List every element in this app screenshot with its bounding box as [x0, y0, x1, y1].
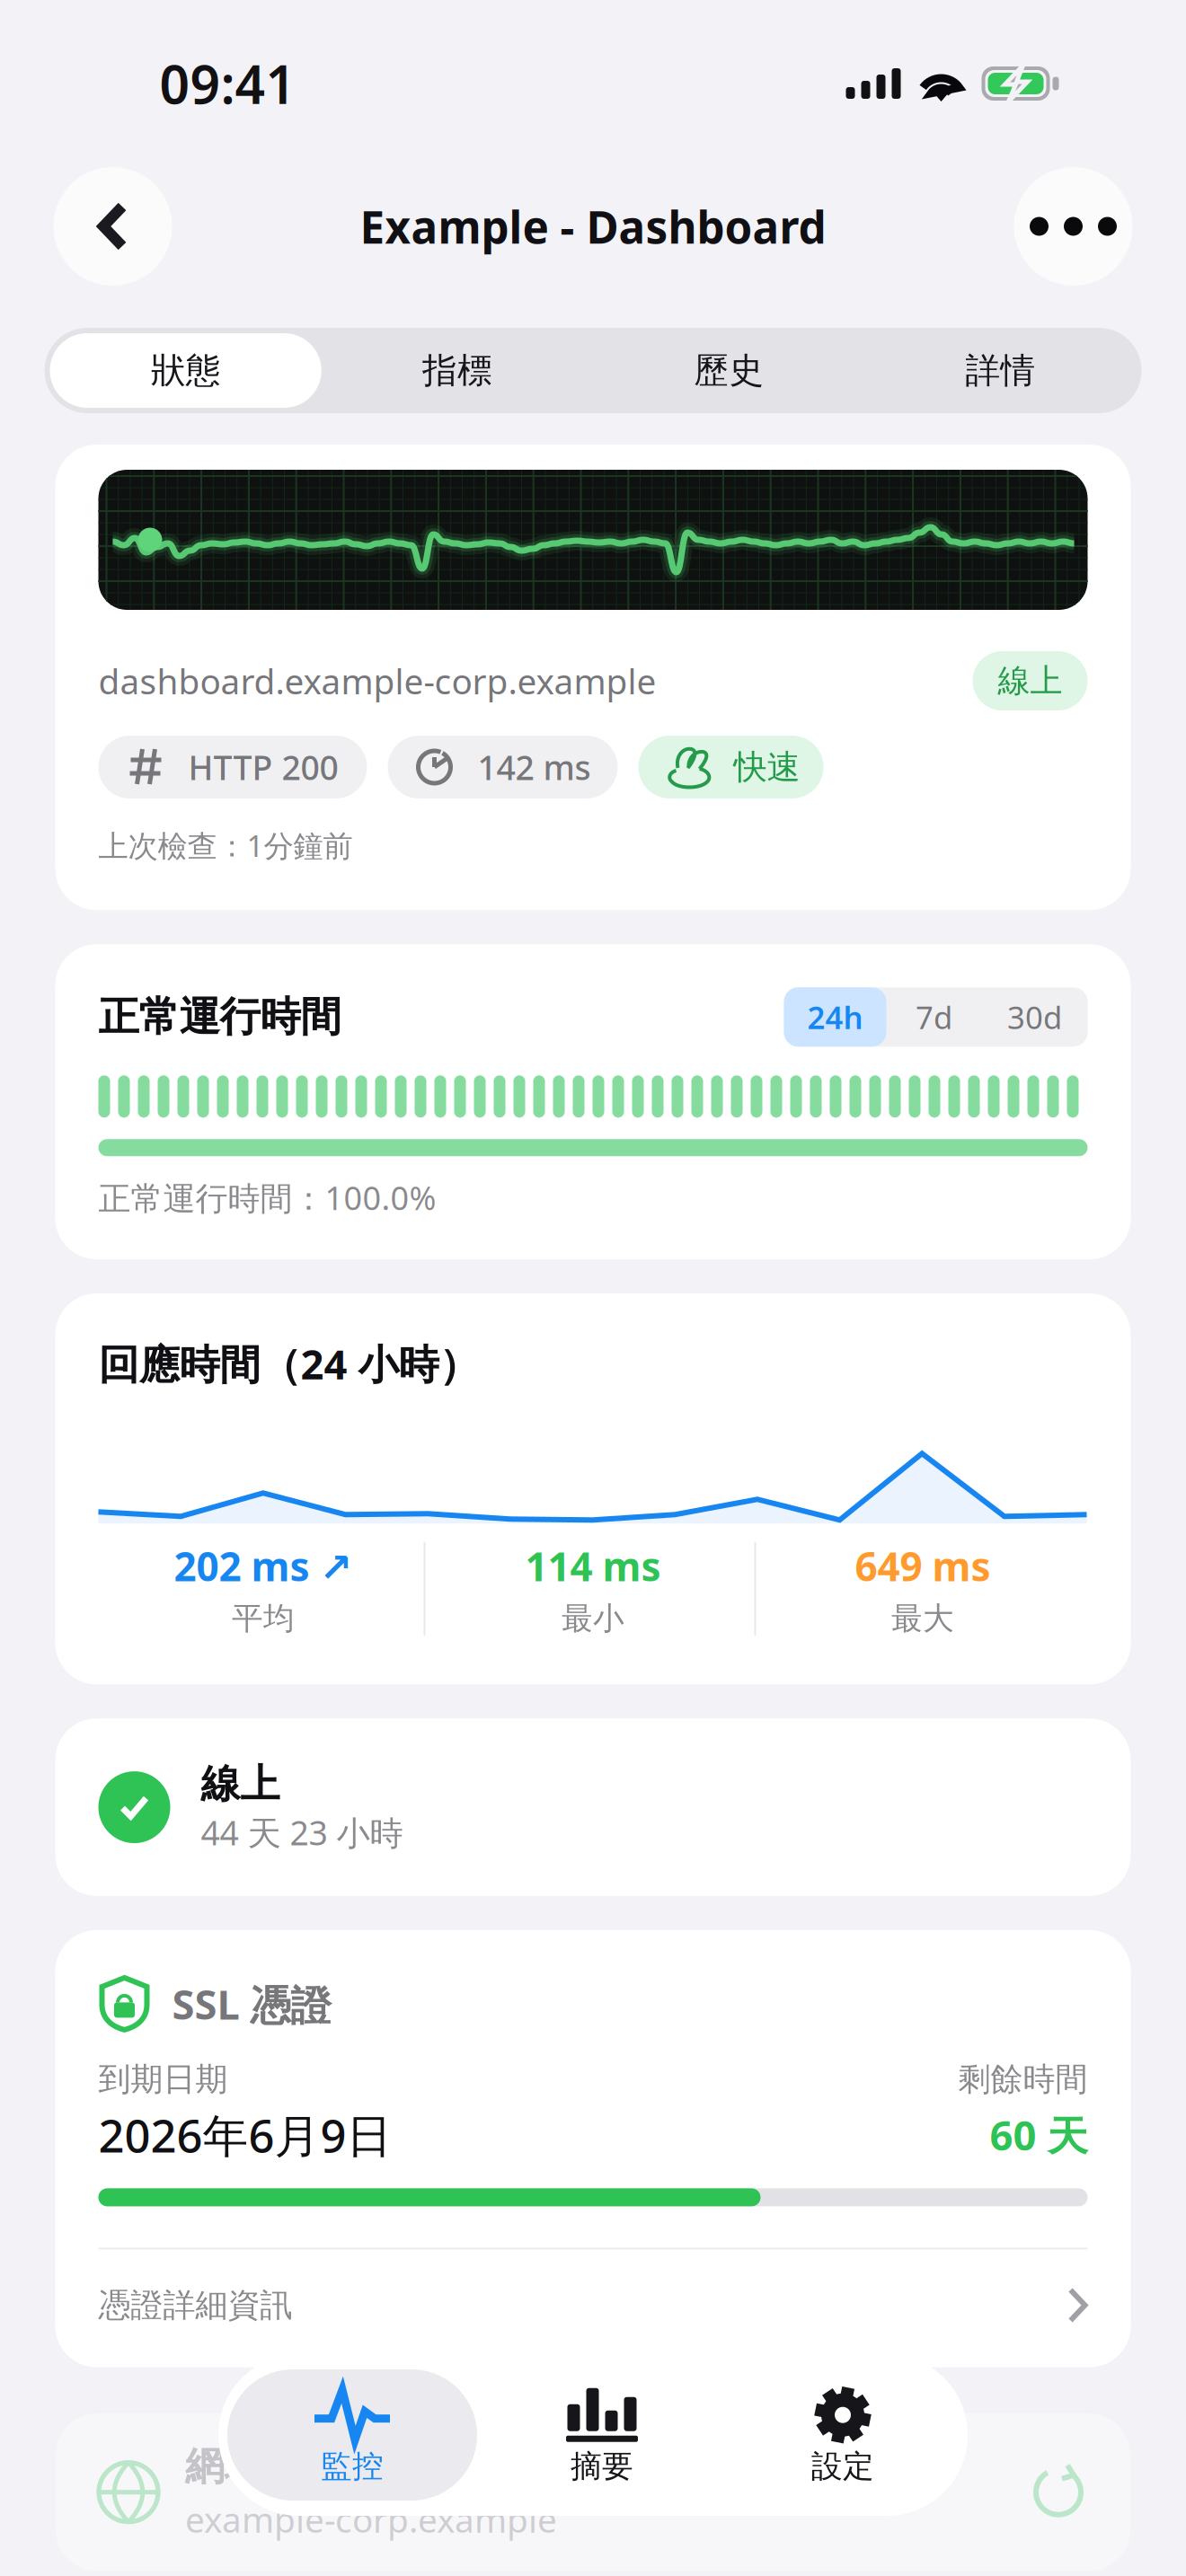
staticText: 設定	[811, 2447, 874, 2486]
button[interactable]: 設定	[727, 2369, 959, 2501]
staticText: 649 ms	[855, 1540, 991, 1592]
staticText: 正常運行時間	[98, 992, 341, 1042]
staticText: 剩餘時間	[958, 2059, 1088, 2099]
staticText: SSL 憑證	[172, 1977, 331, 2031]
staticText: 監控	[321, 2447, 384, 2486]
staticText: 網域	[185, 2442, 264, 2491]
button[interactable]: 詳情	[865, 333, 1136, 408]
staticText: 最大	[891, 1599, 954, 1638]
staticText: 摘要	[571, 2447, 633, 2486]
staticText: 詳情	[965, 349, 1035, 392]
staticText: 09:41	[159, 49, 296, 118]
staticText: 2026年6月9日	[98, 2105, 392, 2165]
button[interactable]: 憑證詳細資訊	[98, 2249, 1088, 2325]
staticText: 線上	[998, 661, 1062, 701]
staticText: 平均	[232, 1599, 295, 1638]
button[interactable]: 7d	[886, 987, 982, 1047]
button[interactable]: 24h	[784, 987, 886, 1047]
button[interactable]: 監控	[227, 2369, 477, 2501]
staticText: 快速	[734, 746, 800, 788]
button[interactable]: Back	[53, 167, 172, 286]
staticText: dashboard.example-corp.example	[98, 658, 656, 704]
button[interactable]: More options	[1014, 167, 1133, 286]
staticText: Example - Dashboard	[360, 197, 826, 256]
staticText: 最小	[562, 1599, 624, 1638]
staticText: 指標	[422, 349, 492, 392]
staticText: 到期日期	[98, 2059, 228, 2099]
staticText: 回應時間（24 小時）	[98, 1337, 479, 1391]
staticText: 歷史	[694, 349, 764, 392]
button[interactable]: 指標	[321, 333, 593, 408]
staticText: 44 天 23 小時	[201, 1810, 403, 1855]
staticText: 60 天	[990, 2108, 1088, 2162]
staticText: 30d	[1007, 996, 1062, 1038]
button[interactable]: 30d	[982, 987, 1088, 1047]
staticText: 7d	[916, 996, 952, 1038]
button[interactable]: 歷史	[593, 333, 865, 408]
staticText: 正常運行時間：100.0%	[98, 1176, 436, 1219]
staticText: 142 ms	[478, 745, 591, 789]
staticText: HTTP 200	[188, 745, 338, 789]
staticText: 線上	[201, 1760, 280, 1808]
staticText: 上次檢查：1分鐘前	[98, 825, 353, 865]
button[interactable]: 狀態	[50, 333, 321, 408]
staticText: 憑證詳細資訊	[98, 2285, 292, 2325]
staticText: 114 ms	[525, 1540, 661, 1592]
staticText: example-corp.example	[185, 2496, 557, 2542]
staticText: 202 ms ↗	[174, 1540, 353, 1592]
button[interactable]: 摘要	[477, 2369, 727, 2501]
staticText: 狀態	[151, 349, 221, 392]
staticText: 24h	[807, 996, 863, 1038]
